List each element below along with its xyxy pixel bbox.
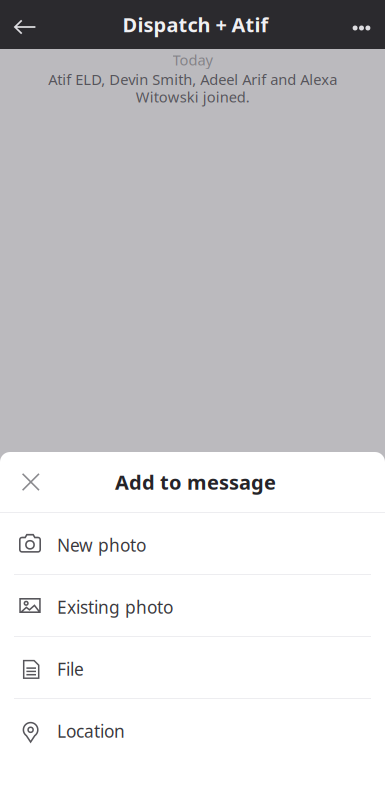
staticText: Existing photo	[57, 595, 173, 618]
staticText: Atif ELD, Devin Smith, Adeel Arif and Al…	[48, 69, 337, 106]
staticText: Location	[57, 719, 125, 742]
button[interactable]: Back	[0, 0, 48, 49]
staticText: New photo	[57, 533, 146, 556]
staticText: Dispatch + Atif	[122, 11, 268, 38]
staticText: File	[57, 657, 84, 680]
staticText: Today	[172, 50, 212, 69]
staticText: Add to message	[115, 469, 276, 495]
button[interactable]: Location	[0, 699, 385, 760]
button[interactable]: New photo	[0, 513, 385, 574]
button[interactable]: Close	[8, 452, 56, 512]
button[interactable]: More options	[337, 0, 385, 49]
button[interactable]: Existing photo	[0, 575, 385, 636]
button[interactable]: File	[0, 637, 385, 698]
